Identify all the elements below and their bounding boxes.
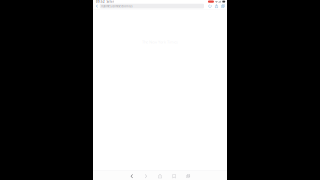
- button[interactable]: Back: [95, 4, 99, 8]
- button[interactable]: Forward: [143, 171, 149, 180]
- button[interactable]: Share: [157, 171, 163, 180]
- button[interactable]: nytimes.com/section/us: [100, 4, 204, 8]
- button[interactable]: Reload: [208, 4, 212, 8]
- staticText: 09:52: [96, 0, 105, 3]
- staticText: nytimes.com/section/us: [101, 4, 132, 8]
- button[interactable]: Back: [129, 171, 134, 180]
- staticText: Safari: [106, 0, 114, 3]
- button[interactable]: Tabs: [185, 171, 191, 180]
- button[interactable]: Share: [214, 4, 218, 8]
- button[interactable]: Bookmarks: [171, 171, 177, 180]
- button[interactable]: Tabs: [221, 4, 225, 8]
